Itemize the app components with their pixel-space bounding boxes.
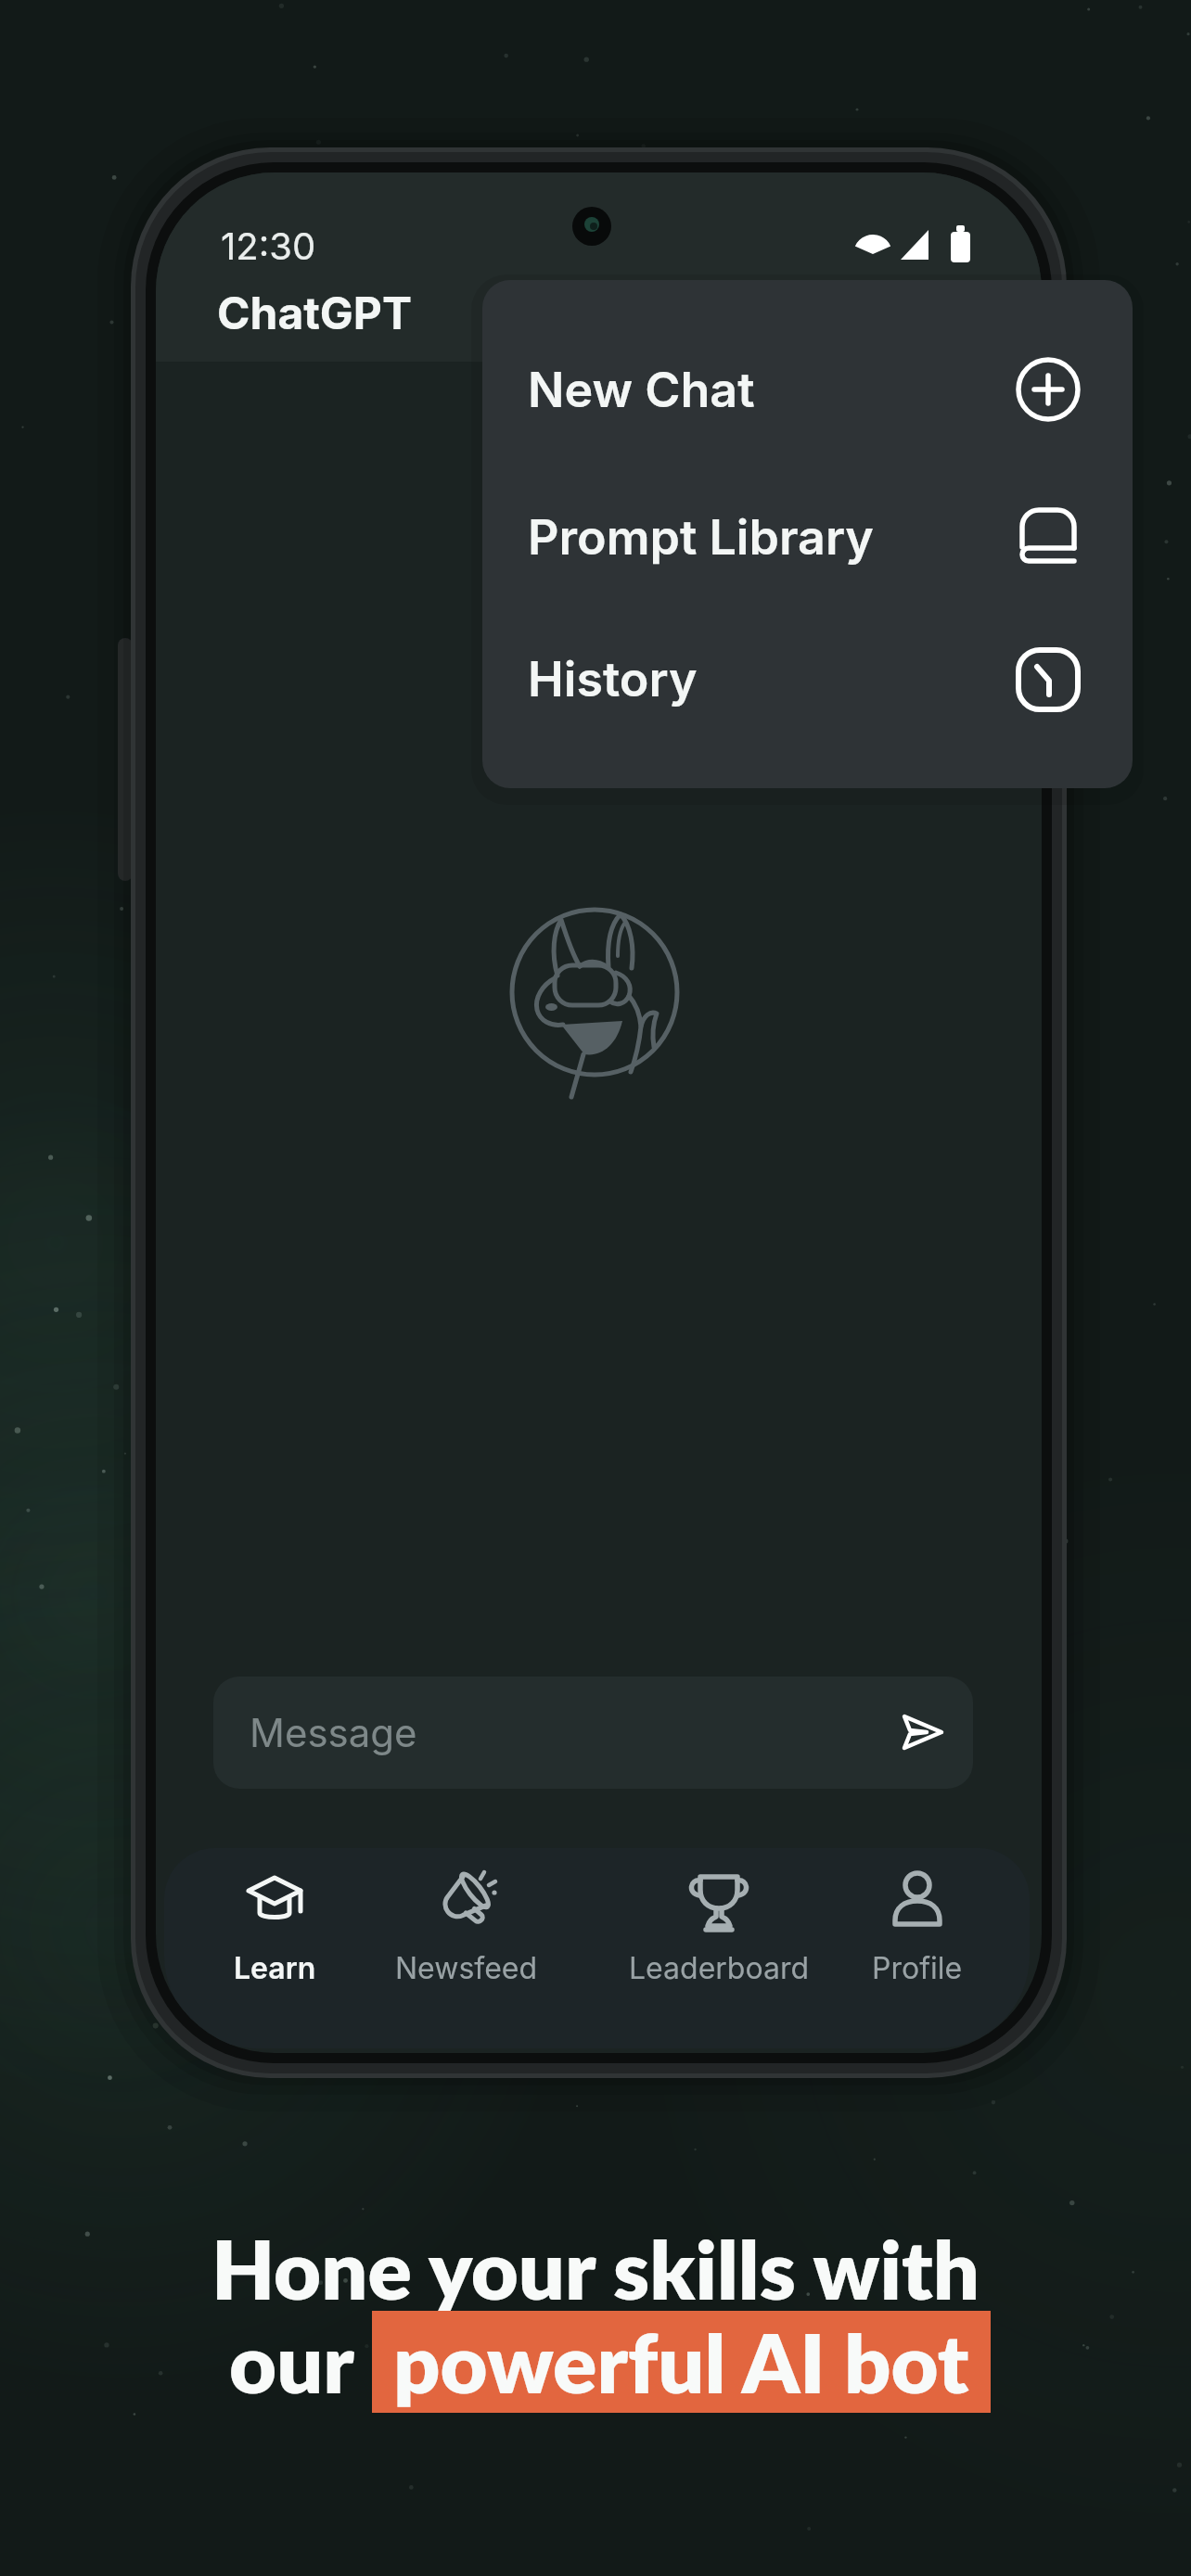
- button[interactable]: History: [482, 613, 1133, 745]
- staticText: Learn: [234, 1950, 316, 1986]
- staticText: ChatGPT: [217, 286, 412, 339]
- button[interactable]: Leaderboard: [589, 1857, 849, 2039]
- staticText: New Chat: [528, 361, 755, 419]
- staticText: Hone your skills with: [0, 2219, 1191, 2317]
- staticText: Prompt Library: [528, 508, 874, 567]
- button[interactable]: Profile: [788, 1857, 1030, 2039]
- staticText: Leaderboard: [629, 1950, 809, 1986]
- staticText: our: [229, 2313, 372, 2411]
- button[interactable]: Newsfeed: [337, 1857, 596, 2039]
- staticText: Profile: [872, 1950, 963, 1986]
- staticText: powerful AI bot: [393, 2313, 969, 2411]
- staticText: 12:30: [221, 223, 316, 268]
- staticText: Message: [250, 1709, 417, 1756]
- staticText: Newsfeed: [395, 1950, 538, 1986]
- button[interactable]: Learn: [164, 1857, 404, 2039]
- button[interactable]: Message: [213, 1677, 973, 1789]
- button[interactable]: [901, 1710, 945, 1754]
- staticText: History: [528, 650, 698, 708]
- button[interactable]: New Chat: [482, 324, 1133, 455]
- button[interactable]: Prompt Library: [482, 471, 1133, 603]
